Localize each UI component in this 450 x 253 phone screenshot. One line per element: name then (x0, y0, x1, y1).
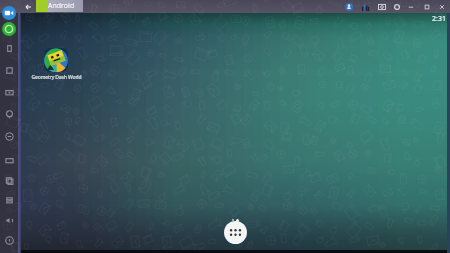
button[interactable]: Fullscreen (0, 39, 18, 57)
button[interactable]: Minimize (404, 0, 418, 13)
button[interactable]: Media folder (0, 151, 18, 169)
button[interactable]: Maximize (420, 0, 434, 13)
staticText: Android (48, 1, 75, 11)
button[interactable]: Screenshot (375, 0, 389, 13)
button[interactable]: Apps (224, 221, 247, 244)
button[interactable]: Geometry Dash World (26, 48, 86, 81)
button[interactable]: Copy to PC (0, 171, 18, 189)
button[interactable]: Android (36, 0, 83, 12)
button[interactable]: Media manager (0, 4, 18, 22)
button[interactable]: Volume (0, 211, 18, 229)
button[interactable]: Help (0, 231, 18, 249)
button[interactable]: Screen recorder (0, 20, 18, 38)
staticText: 2:31 (432, 14, 446, 24)
button[interactable]: Account (342, 0, 356, 13)
button[interactable]: Screenshot (0, 83, 18, 101)
button[interactable]: Settings (390, 0, 404, 13)
button[interactable]: Back (21, 0, 35, 13)
staticText: Geometry Dash World (31, 74, 82, 81)
button[interactable]: Close (435, 0, 449, 13)
button[interactable]: Multi instance (0, 191, 18, 209)
button[interactable]: Location (0, 105, 18, 123)
button[interactable]: Rotate (0, 61, 18, 79)
button[interactable]: Shake (0, 127, 18, 145)
button[interactable]: Statistics (359, 0, 373, 13)
